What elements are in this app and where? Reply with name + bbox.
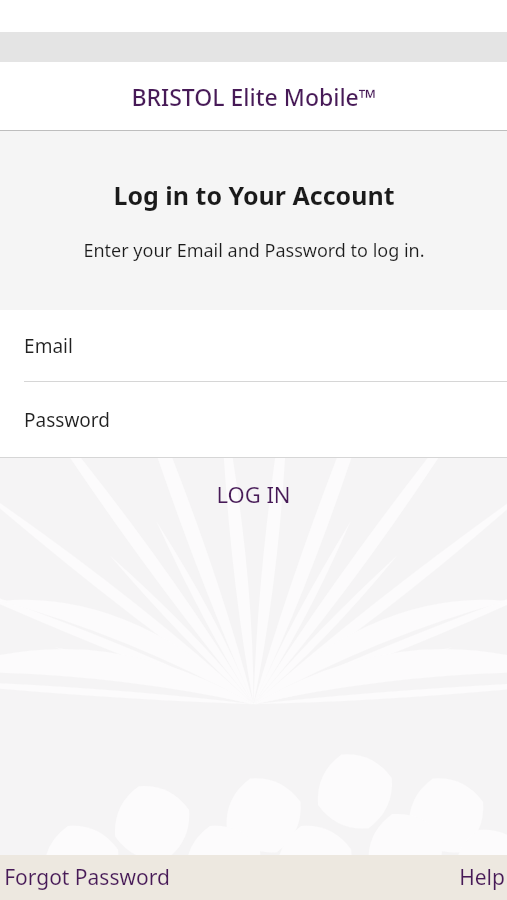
button[interactable]: Help [459, 863, 505, 892]
button[interactable]: Forgot Password [4, 863, 170, 892]
staticText: LOG IN [216, 479, 291, 509]
button[interactable]: Password [0, 382, 507, 457]
staticText: Email [24, 333, 73, 359]
staticText: Help [459, 863, 505, 892]
staticText: Log in to Your Account [113, 178, 395, 212]
staticText: Password [24, 407, 110, 433]
button[interactable]: LOG IN [0, 458, 507, 530]
staticText: BRISTOL Elite Mobile™ [131, 81, 377, 112]
staticText: Forgot Password [4, 863, 170, 892]
staticText: Enter your Email and Password to log in. [83, 238, 425, 263]
button[interactable]: Email [0, 310, 507, 381]
